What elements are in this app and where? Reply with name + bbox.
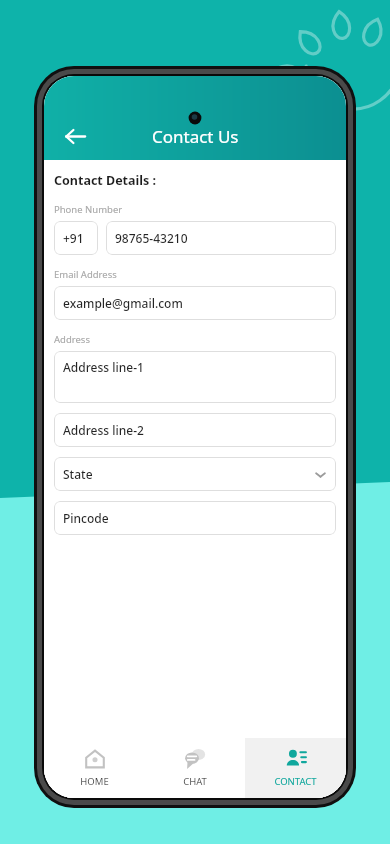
staticText: Address	[54, 333, 90, 346]
staticText: HOME	[80, 775, 109, 788]
button[interactable]: State	[54, 457, 336, 491]
staticText: State	[63, 466, 93, 482]
button[interactable]: Address line-2	[54, 413, 336, 447]
staticText: Email Address	[54, 268, 117, 281]
staticText: Phone Number	[54, 203, 123, 216]
button[interactable]: Address line-1	[54, 351, 336, 403]
button[interactable]: HOME	[44, 738, 144, 798]
staticText: example@gmail.com	[63, 295, 183, 311]
button[interactable]: Back	[53, 114, 97, 158]
staticText: +91	[63, 230, 84, 246]
staticText: CONTACT	[274, 775, 317, 788]
staticText: 98765-43210	[115, 230, 188, 246]
staticText: Pincode	[63, 510, 109, 526]
staticText: Address line-1	[63, 359, 144, 375]
button[interactable]: +91	[54, 221, 98, 255]
button[interactable]: example@gmail.com	[54, 286, 336, 320]
button[interactable]: CONTACT	[245, 738, 346, 798]
button[interactable]: CHAT	[144, 738, 245, 798]
button[interactable]: Pincode	[54, 501, 336, 535]
button[interactable]: 98765-43210	[106, 221, 336, 255]
staticText: Address line-2	[63, 422, 144, 438]
staticText: Contact Details :	[54, 172, 157, 189]
staticText: CHAT	[183, 775, 207, 788]
staticText: Contact Us	[152, 125, 239, 148]
